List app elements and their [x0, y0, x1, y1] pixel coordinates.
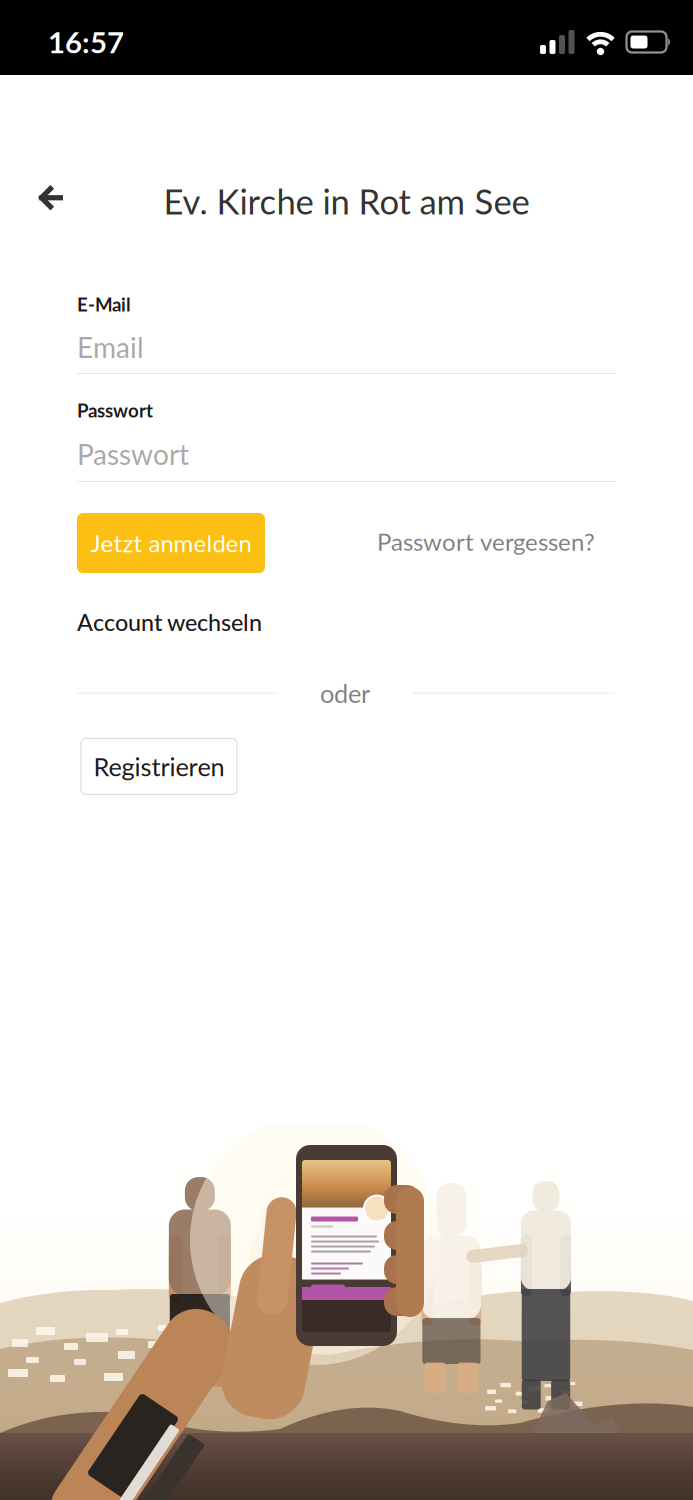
staticText: Ev. Kirche in Rot am See	[163, 180, 529, 222]
button[interactable]: Jetzt anmelden	[77, 513, 265, 573]
staticText: 16:57	[48, 24, 124, 60]
staticText: Jetzt anmelden	[90, 529, 251, 557]
staticText: E-Mail	[77, 293, 131, 315]
staticText: Passwort vergessen?	[377, 527, 595, 556]
staticText: Passwort	[77, 437, 189, 471]
staticText: oder	[320, 678, 370, 708]
staticText: Email	[77, 330, 144, 364]
button[interactable]: Registrieren	[81, 738, 237, 794]
button[interactable]: Account wechseln	[77, 608, 262, 636]
staticText: Registrieren	[93, 751, 224, 782]
button[interactable]: Back	[18, 168, 84, 234]
staticText: Account wechseln	[77, 608, 262, 636]
staticText: Passwort	[77, 399, 153, 421]
button[interactable]: Passwort vergessen?	[377, 513, 595, 556]
